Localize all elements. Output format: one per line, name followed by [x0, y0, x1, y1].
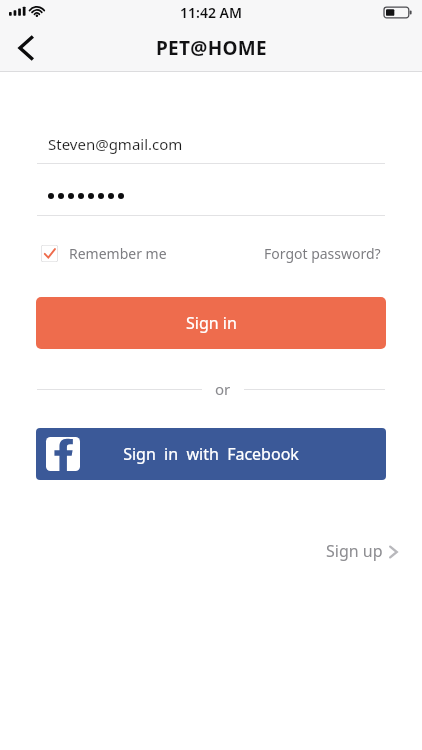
staticText: Sign in with Facebook	[123, 443, 299, 465]
staticText: Sign in	[186, 312, 237, 334]
staticText: Sign up	[326, 540, 383, 562]
button[interactable]: Remember me	[41, 244, 171, 263]
button[interactable]: Steven@gmail.com	[37, 125, 385, 163]
staticText: Steven@gmail.com	[48, 134, 183, 154]
staticText: PET@HOME	[156, 35, 267, 61]
staticText: 11:42 AM	[180, 3, 242, 22]
button[interactable]	[37, 177, 385, 215]
button[interactable]: Sign up	[322, 534, 403, 568]
staticText: Forgot password?	[264, 244, 381, 263]
button[interactable]: Back	[0, 24, 52, 72]
button[interactable]: Sign in	[36, 297, 386, 349]
staticText: or	[215, 379, 231, 399]
button[interactable]: Sign in with Facebook	[36, 428, 386, 480]
button[interactable]: Forgot password?	[264, 244, 381, 263]
staticText: Remember me	[69, 244, 167, 263]
